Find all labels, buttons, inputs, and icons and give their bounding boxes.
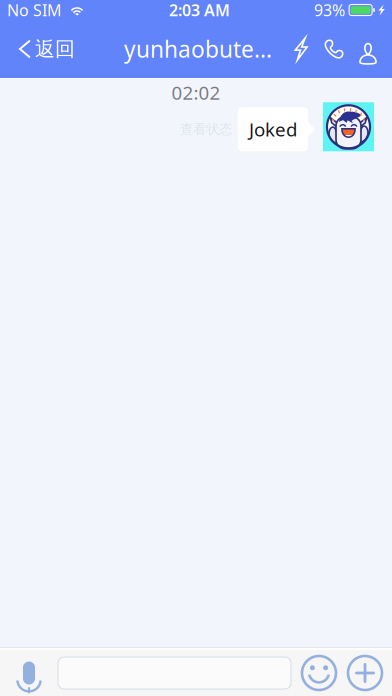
staticText: 02:02 (171, 80, 220, 105)
staticText: No SIM (7, 0, 62, 21)
staticText: Joked (249, 117, 297, 142)
button[interactable]: Profile (351, 20, 385, 78)
button[interactable]: Emoji (296, 648, 342, 696)
staticText: 2:03 AM (169, 0, 230, 21)
button[interactable]: More (342, 648, 388, 696)
button[interactable]: 返回 (0, 20, 83, 78)
button[interactable]: Call (317, 20, 351, 78)
button[interactable]: Lightning (285, 20, 317, 78)
staticText: 返回 (35, 37, 75, 61)
button[interactable]: Voice message (0, 648, 58, 696)
staticText: 93% (314, 0, 345, 21)
staticText: 查看状态 (180, 121, 232, 137)
staticText: yunhaobute... (124, 34, 272, 64)
